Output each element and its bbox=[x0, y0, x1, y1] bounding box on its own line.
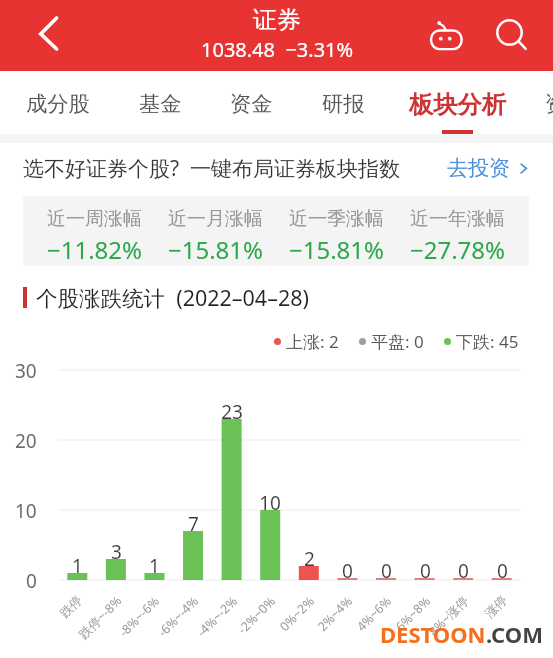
staticText: 板块分析 bbox=[409, 90, 507, 121]
staticText: 个股涨跌统计 (2022–04–28) bbox=[36, 283, 309, 312]
staticText: −15.81% bbox=[168, 233, 264, 266]
staticText: −15.81% bbox=[289, 233, 385, 266]
staticText: 近一月涨幅 bbox=[168, 207, 263, 231]
staticText: 研报 bbox=[322, 90, 365, 117]
staticText: 平盘: 0 bbox=[371, 330, 424, 353]
staticText: 1 bbox=[72, 553, 83, 573]
staticText: −11.82% bbox=[47, 233, 143, 266]
staticText: 20 bbox=[15, 428, 37, 454]
staticText: 涨停 bbox=[482, 592, 511, 621]
staticText: 0 bbox=[458, 558, 469, 578]
staticText: 0 bbox=[342, 558, 353, 578]
button[interactable]: 资金 bbox=[228, 71, 275, 134]
staticText: 2 bbox=[304, 546, 315, 566]
staticText: 去投资 bbox=[447, 155, 510, 181]
button[interactable]: 成分股 bbox=[24, 71, 92, 134]
staticText: −27.78% bbox=[410, 233, 506, 266]
staticText: 1 bbox=[149, 553, 160, 573]
staticText: 10 bbox=[15, 498, 37, 524]
button[interactable]: Search bbox=[490, 10, 536, 56]
staticText: 资 bbox=[545, 90, 553, 117]
staticText: 资金 bbox=[230, 90, 273, 117]
staticText: 近一周涨幅 bbox=[47, 207, 142, 231]
button[interactable]: Assistant robot bbox=[424, 11, 470, 57]
staticText: -8%~-6% bbox=[115, 592, 163, 640]
staticText: 2%~4% bbox=[314, 592, 356, 635]
staticText: 7 bbox=[188, 511, 199, 531]
staticText: -2%~0% bbox=[234, 592, 279, 638]
staticText: 6%~8% bbox=[392, 592, 434, 635]
staticText: 下跌: 45 bbox=[456, 330, 519, 353]
staticText: 0 bbox=[420, 558, 431, 578]
staticText: 选不好证券个股? 一键布局证券板块指数 bbox=[23, 154, 401, 183]
staticText: 0 bbox=[381, 558, 392, 578]
staticText: DESTOON bbox=[380, 619, 486, 649]
staticText: 基金 bbox=[139, 90, 182, 117]
staticText: 23 bbox=[221, 399, 243, 419]
staticText: .COM bbox=[486, 619, 543, 649]
staticText: 成分股 bbox=[26, 90, 90, 117]
staticText: 证券 bbox=[253, 5, 301, 35]
button[interactable]: 基金 bbox=[137, 71, 184, 134]
staticText: 4%~6% bbox=[353, 592, 395, 635]
staticText: 0%~2% bbox=[276, 592, 318, 635]
button[interactable]: 研报 bbox=[320, 71, 367, 134]
staticText: 30 bbox=[15, 358, 37, 384]
staticText: 近一年涨幅 bbox=[410, 207, 505, 231]
staticText: 0 bbox=[497, 558, 508, 578]
staticText: -4%~-2% bbox=[193, 592, 241, 640]
staticText: 8%~涨停 bbox=[425, 592, 472, 640]
button[interactable]: Back bbox=[26, 10, 72, 56]
button[interactable]: 资 bbox=[543, 71, 553, 134]
staticText: 3 bbox=[111, 539, 122, 559]
staticText: 跌停 bbox=[57, 592, 86, 621]
staticText: 1038.48 −3.31% bbox=[201, 36, 354, 63]
staticText: 近一季涨幅 bbox=[289, 207, 384, 231]
staticText: -6%~-4% bbox=[154, 592, 202, 640]
staticText: 跌停~-8% bbox=[75, 592, 125, 642]
button[interactable]: 去投资 bbox=[447, 155, 530, 181]
staticText: 0 bbox=[26, 568, 37, 594]
button[interactable]: 板块分析 bbox=[407, 71, 508, 134]
staticText: 10 bbox=[259, 490, 281, 510]
staticText: 上涨: 2 bbox=[286, 330, 339, 353]
